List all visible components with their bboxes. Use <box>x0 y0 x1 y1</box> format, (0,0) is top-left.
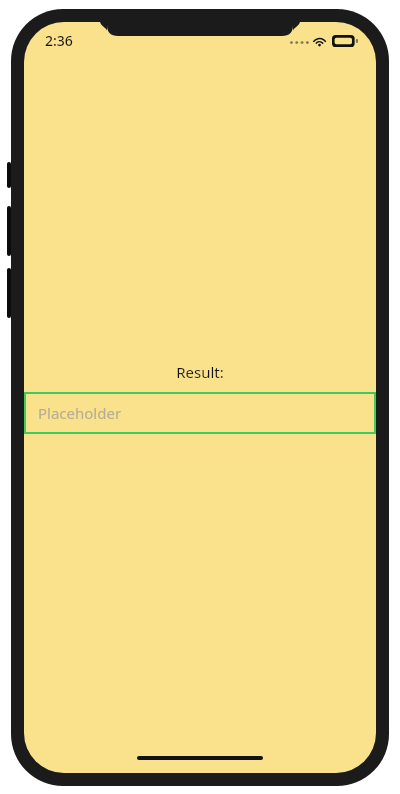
staticText: Placeholder <box>38 403 122 423</box>
staticText: 2:36 <box>45 31 73 50</box>
button[interactable]: Placeholder <box>24 392 376 434</box>
staticText: Result: <box>24 362 376 382</box>
